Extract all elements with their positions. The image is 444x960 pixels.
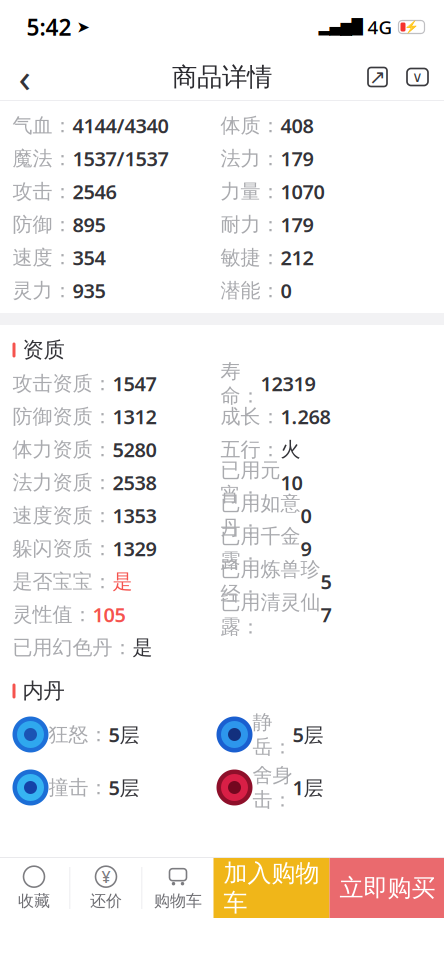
button[interactable]: ¥ xyxy=(70,858,141,918)
staticText: 耐力： xyxy=(220,212,280,237)
staticText: 0 xyxy=(280,277,291,304)
staticText: 已用千金露： xyxy=(220,524,300,573)
staticText: 354 xyxy=(72,244,105,271)
staticText: 速度资质： xyxy=(12,503,112,528)
staticText: 212 xyxy=(280,244,313,271)
staticText: 寿命： xyxy=(220,359,260,408)
staticText: 防御： xyxy=(12,212,72,237)
staticText: 4G xyxy=(362,15,397,39)
button[interactable]: 消息 xyxy=(397,55,437,99)
staticText: 收藏 xyxy=(18,891,50,911)
staticText: 4144/4340 xyxy=(72,112,168,139)
staticText: 9 xyxy=(300,535,311,562)
staticText: 1353 xyxy=(112,502,156,529)
staticText: 1.268 xyxy=(280,403,330,430)
staticText: 五行： xyxy=(220,437,280,462)
button[interactable]: ★ xyxy=(0,858,69,918)
staticText: ¥ xyxy=(101,866,110,887)
staticText: 防御资质： xyxy=(12,404,112,429)
staticText: 体质： xyxy=(220,113,280,138)
staticText: 1070 xyxy=(280,178,324,205)
staticText: 是否宝宝： xyxy=(12,569,112,594)
staticText: ∨ xyxy=(412,69,423,85)
staticText: 成长： xyxy=(220,404,280,429)
staticText: 是 xyxy=(132,635,152,660)
staticText: 购物车 xyxy=(154,891,202,911)
staticText: 10 xyxy=(280,469,302,496)
staticText: 1537/1537 xyxy=(72,145,168,172)
staticText: 静岳： xyxy=(252,710,292,759)
staticText: ↗ xyxy=(369,66,386,88)
staticText: 灵力： xyxy=(12,278,72,303)
staticText: 已用炼兽珍经： xyxy=(220,557,320,606)
staticText: 5层 xyxy=(108,774,139,801)
staticText: 火 xyxy=(280,437,300,462)
staticText: 已用如意丹： xyxy=(220,491,300,540)
staticText: 5:42 xyxy=(26,12,71,42)
staticText: 立即购买 xyxy=(339,873,435,903)
staticText: 魔法： xyxy=(12,146,72,171)
staticText: ➤ xyxy=(71,18,89,36)
staticText: 舍身击： xyxy=(252,763,292,812)
staticText: 935 xyxy=(72,277,105,304)
staticText: 体力资质： xyxy=(12,437,112,462)
staticText: 内丹 xyxy=(22,678,64,704)
staticText: 1层 xyxy=(292,774,323,801)
staticText: 灵性值： xyxy=(12,602,92,627)
staticText: 撞击： xyxy=(48,775,108,800)
staticText: ★ xyxy=(24,864,44,889)
staticText: 2538 xyxy=(112,469,156,496)
button[interactable]: 加入购物车 xyxy=(213,858,329,918)
staticText: 179 xyxy=(280,211,313,238)
staticText: 408 xyxy=(280,112,313,139)
staticText: ‹ xyxy=(18,50,30,103)
staticText: 敏捷： xyxy=(220,245,280,270)
staticText: 已用清灵仙露： xyxy=(220,590,320,639)
button[interactable]: 立即购买 xyxy=(329,858,444,918)
staticText: 法力资质： xyxy=(12,470,112,495)
staticText: 1547 xyxy=(112,370,156,397)
staticText: 潜能： xyxy=(220,278,280,303)
staticText: 12319 xyxy=(260,370,315,397)
staticText: 5 xyxy=(320,568,331,595)
staticText: 加入购物车 xyxy=(223,858,319,917)
staticText: 7 xyxy=(320,601,331,628)
staticText: 1312 xyxy=(112,403,156,430)
staticText: 法力： xyxy=(220,146,280,171)
staticText: 5280 xyxy=(112,436,156,463)
staticText: ⚡ xyxy=(404,20,419,34)
staticText: 商品详情 xyxy=(172,61,272,92)
staticText: 狂怒： xyxy=(48,722,108,747)
staticText: 1329 xyxy=(112,535,156,562)
staticText: ▂▄▆█ xyxy=(318,19,362,35)
staticText: 895 xyxy=(72,211,105,238)
button[interactable]: 分享 xyxy=(357,55,397,99)
staticText: 105 xyxy=(92,601,125,628)
staticText: 179 xyxy=(280,145,313,172)
staticText: 躲闪资质： xyxy=(12,536,112,561)
staticText: 气血： xyxy=(12,113,72,138)
staticText: 资质 xyxy=(22,337,64,363)
staticText: 速度： xyxy=(12,245,72,270)
staticText: 5层 xyxy=(108,721,139,748)
staticText: 还价 xyxy=(90,891,122,911)
staticText: 5层 xyxy=(292,721,323,748)
button[interactable]: 购物车 xyxy=(142,858,213,918)
staticText: 已用元宵： xyxy=(220,458,280,507)
staticText: 力量： xyxy=(220,179,280,204)
button[interactable]: 返回 xyxy=(2,55,46,99)
staticText: 0 xyxy=(300,502,311,529)
staticText: 已用幻色丹： xyxy=(12,635,132,660)
staticText: 攻击资质： xyxy=(12,371,112,396)
staticText: 攻击： xyxy=(12,179,72,204)
staticText: 2546 xyxy=(72,178,116,205)
staticText: 是 xyxy=(112,569,132,594)
